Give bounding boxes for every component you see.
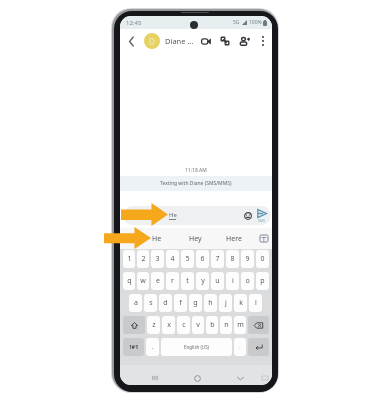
button[interactable]: x [162, 316, 175, 334]
button[interactable]: s [144, 294, 157, 312]
staticText: 3 [155, 254, 160, 264]
button[interactable]: , [146, 338, 159, 356]
button[interactable]: 1 [123, 250, 135, 268]
staticText: l [255, 298, 257, 308]
button[interactable]: o [241, 272, 254, 290]
staticText: 6 [200, 254, 205, 264]
button[interactable]: Send SMS [257, 209, 267, 223]
button[interactable]: He [123, 206, 271, 225]
button[interactable]: Clipboard [255, 228, 272, 249]
button[interactable]: 0 [256, 250, 269, 268]
staticText: m [237, 320, 244, 330]
staticText: b [210, 320, 215, 330]
staticText: Here [226, 234, 242, 244]
button[interactable]: Emoji [242, 210, 254, 222]
staticText: k [239, 298, 243, 308]
staticText: Hey [189, 234, 202, 244]
button[interactable]: e [151, 272, 164, 290]
staticText: 4 [170, 254, 175, 264]
button[interactable]: p [256, 272, 269, 290]
button[interactable]: Home [190, 371, 204, 385]
button[interactable]: More options [256, 34, 270, 48]
button[interactable]: Back [233, 371, 247, 385]
button[interactable]: Hey [176, 228, 214, 249]
staticText: p [260, 276, 265, 286]
button[interactable]: . [234, 338, 246, 356]
button[interactable]: f [174, 294, 187, 312]
staticText: , [152, 344, 154, 351]
staticText: 7 [215, 254, 220, 264]
button[interactable]: n [220, 316, 232, 334]
button[interactable]: j [219, 294, 232, 312]
button[interactable]: b [206, 316, 218, 334]
button[interactable]: q [123, 272, 135, 290]
staticText: 11:18 AM [185, 167, 207, 174]
button[interactable]: English (US) [161, 338, 232, 356]
button[interactable]: 4 [166, 250, 179, 268]
staticText: 0 [260, 254, 265, 264]
button[interactable]: Enter [248, 338, 269, 356]
staticText: z [152, 320, 156, 330]
staticText: o [245, 276, 250, 286]
staticText: u [215, 276, 220, 286]
staticText: D [149, 36, 155, 47]
staticText: x [167, 320, 171, 330]
staticText: h [208, 298, 213, 308]
staticText: c [182, 320, 186, 330]
button[interactable]: t [181, 272, 194, 290]
staticText: 5 [185, 254, 190, 264]
staticText: d [163, 298, 168, 308]
staticText: y [201, 276, 205, 286]
staticText: w [140, 276, 146, 286]
button[interactable]: Back [124, 34, 138, 48]
button[interactable]: g [189, 294, 202, 312]
button[interactable]: !#1 [123, 338, 144, 356]
staticText: i [232, 276, 234, 286]
button[interactable]: Add person [238, 34, 252, 48]
staticText: t [186, 276, 189, 286]
button[interactable]: Call [218, 34, 232, 48]
button[interactable]: Hide keyboard [259, 372, 271, 384]
staticText: 1 [127, 254, 132, 264]
staticText: a [134, 298, 138, 308]
staticText: s [149, 298, 153, 308]
button[interactable]: Backspace [248, 316, 269, 334]
button[interactable]: a [129, 294, 142, 312]
button[interactable]: u [211, 272, 224, 290]
button[interactable]: y [196, 272, 209, 290]
button[interactable]: 5 [181, 250, 194, 268]
button[interactable]: w [137, 272, 149, 290]
button[interactable]: Video call [199, 34, 213, 48]
button[interactable]: 7 [211, 250, 224, 268]
button[interactable]: Recents [148, 371, 162, 385]
button[interactable]: 9 [241, 250, 254, 268]
button[interactable]: v [192, 316, 204, 334]
button[interactable]: l [249, 294, 262, 312]
button[interactable]: Here [215, 228, 253, 249]
staticText: English (US) [184, 344, 209, 350]
button[interactable]: 6 [196, 250, 209, 268]
button[interactable]: h [204, 294, 217, 312]
button[interactable]: k [234, 294, 247, 312]
staticText: Texting with Diane (SMS/MMS) [160, 180, 232, 187]
staticText: He [169, 211, 177, 219]
staticText: !#1 [129, 343, 139, 351]
staticText: 100% [249, 19, 262, 26]
staticText: n [224, 320, 229, 330]
button[interactable]: z [147, 316, 160, 334]
staticText: r [171, 276, 174, 286]
button[interactable]: 8 [226, 250, 239, 268]
staticText: f [179, 298, 182, 308]
button[interactable]: d [159, 294, 172, 312]
button[interactable]: Shift [123, 316, 145, 334]
button[interactable]: m [234, 316, 246, 334]
button[interactable]: 2 [137, 250, 149, 268]
button[interactable]: i [226, 272, 239, 290]
button[interactable]: He [138, 228, 176, 249]
staticText: 9 [245, 254, 250, 264]
staticText: SMS [258, 218, 266, 223]
button[interactable]: 3 [151, 250, 164, 268]
button[interactable]: Contact avatar [144, 33, 160, 49]
button[interactable]: r [166, 272, 179, 290]
button[interactable]: c [177, 316, 190, 334]
